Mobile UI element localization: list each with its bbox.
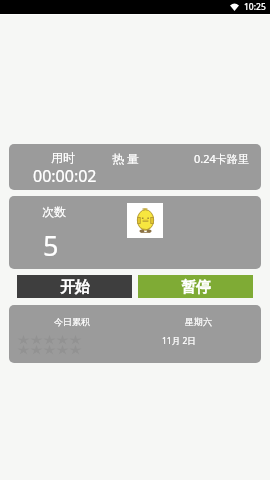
staticText: 暂停 bbox=[181, 278, 211, 297]
staticText: 10:25 bbox=[244, 1, 266, 13]
staticText: 0.24卡路里 bbox=[194, 151, 249, 166]
other: Wi-Fi signal bbox=[230, 3, 239, 11]
staticText: 今日累积 bbox=[54, 316, 90, 327]
staticText: 次数 bbox=[42, 204, 66, 219]
button[interactable]: 今日累积 bbox=[9, 305, 261, 363]
staticText: 用时 bbox=[51, 150, 75, 165]
staticText: 星期六 bbox=[185, 316, 212, 327]
button[interactable]: 次数 bbox=[9, 196, 261, 269]
staticText: 5 bbox=[43, 227, 59, 264]
button[interactable]: 用时 bbox=[9, 144, 261, 190]
button[interactable]: 开始 bbox=[17, 275, 132, 298]
staticText: 00:00:02 bbox=[33, 165, 97, 187]
button[interactable]: 暂停 bbox=[138, 275, 253, 298]
staticText: 热 量 bbox=[112, 150, 140, 166]
staticText: 11月 2日 bbox=[162, 335, 196, 347]
staticText: 开始 bbox=[60, 278, 90, 297]
